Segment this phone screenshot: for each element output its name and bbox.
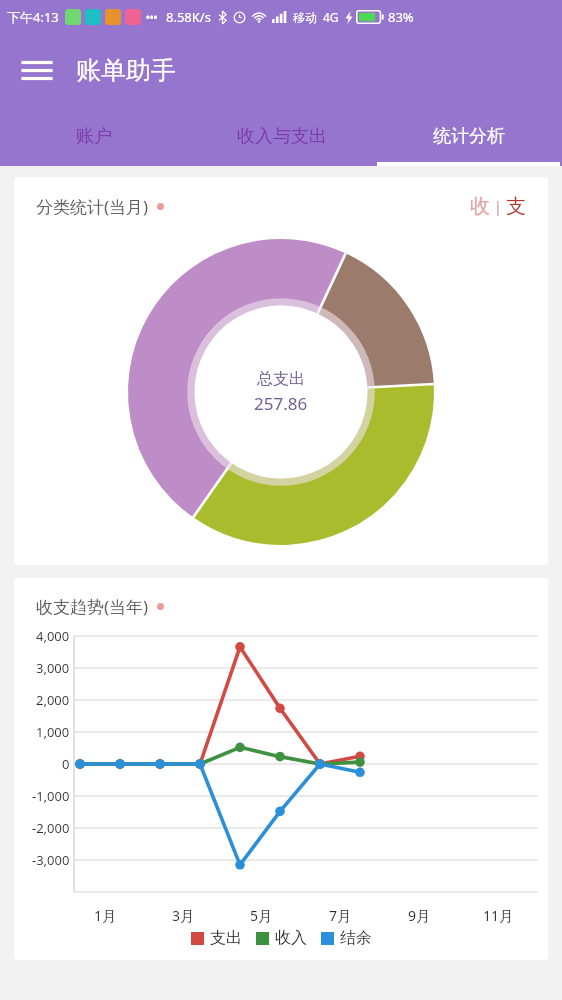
staticText: 收支趋势(当年) xyxy=(36,595,149,618)
button[interactable]: 结余 xyxy=(321,928,372,948)
button[interactable]: 收 xyxy=(466,194,494,219)
staticText: 结余 xyxy=(340,928,372,948)
staticText: 4,000 xyxy=(36,627,70,645)
staticText: 0 xyxy=(62,755,70,773)
staticText: 统计分析 xyxy=(433,125,505,148)
staticText: 总支出 xyxy=(257,369,305,389)
staticText: | xyxy=(494,197,502,216)
button[interactable]: 支出 xyxy=(191,928,242,948)
staticText: 收入 xyxy=(275,928,307,948)
staticText: ••• xyxy=(146,10,158,24)
button[interactable]: 统计分析 xyxy=(375,106,562,166)
staticText: -2,000 xyxy=(32,819,70,837)
staticText: 收入与支出 xyxy=(237,125,327,148)
staticText: -1,000 xyxy=(32,787,70,805)
staticText: -3,000 xyxy=(32,851,70,869)
staticText: 9月 xyxy=(408,906,431,925)
staticText: 账单助手 xyxy=(76,55,176,86)
staticText: 移动 xyxy=(293,10,317,25)
staticText: 下午4:13 xyxy=(7,8,59,26)
staticText: 分类统计(当月) xyxy=(36,195,149,218)
staticText: 5月 xyxy=(250,906,273,925)
staticText: 1月 xyxy=(94,906,117,925)
staticText: 3月 xyxy=(172,906,195,925)
staticText: 账户 xyxy=(76,125,112,148)
staticText: 1,000 xyxy=(36,723,70,741)
staticText: 83% xyxy=(388,8,414,26)
button[interactable]: 收入 xyxy=(256,928,307,948)
staticText: 支出 xyxy=(210,928,242,948)
button[interactable]: 收入与支出 xyxy=(188,106,375,166)
staticText: 7月 xyxy=(329,906,352,925)
staticText: 2,000 xyxy=(36,691,70,709)
button[interactable]: 支 xyxy=(502,194,530,219)
staticText: 收 xyxy=(470,194,490,219)
staticText: 支 xyxy=(506,194,526,219)
staticText: 257.86 xyxy=(254,392,308,415)
staticText: 3,000 xyxy=(36,659,70,677)
staticText: 8.58K/s xyxy=(166,8,211,26)
staticText: 4G xyxy=(323,9,339,25)
staticText: 11月 xyxy=(483,906,514,925)
button[interactable]: Menu xyxy=(12,45,62,95)
button[interactable]: 账户 xyxy=(0,106,188,166)
